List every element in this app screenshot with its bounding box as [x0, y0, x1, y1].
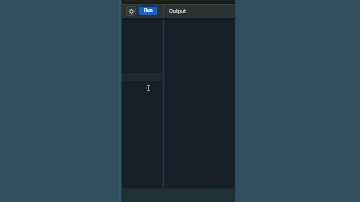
- button[interactable]: Run: [139, 7, 157, 15]
- button[interactable]: Settings: [126, 6, 136, 16]
- button[interactable]: Output: [169, 4, 186, 18]
- staticText: Run: [144, 8, 153, 14]
- staticText: Output: [169, 8, 186, 15]
